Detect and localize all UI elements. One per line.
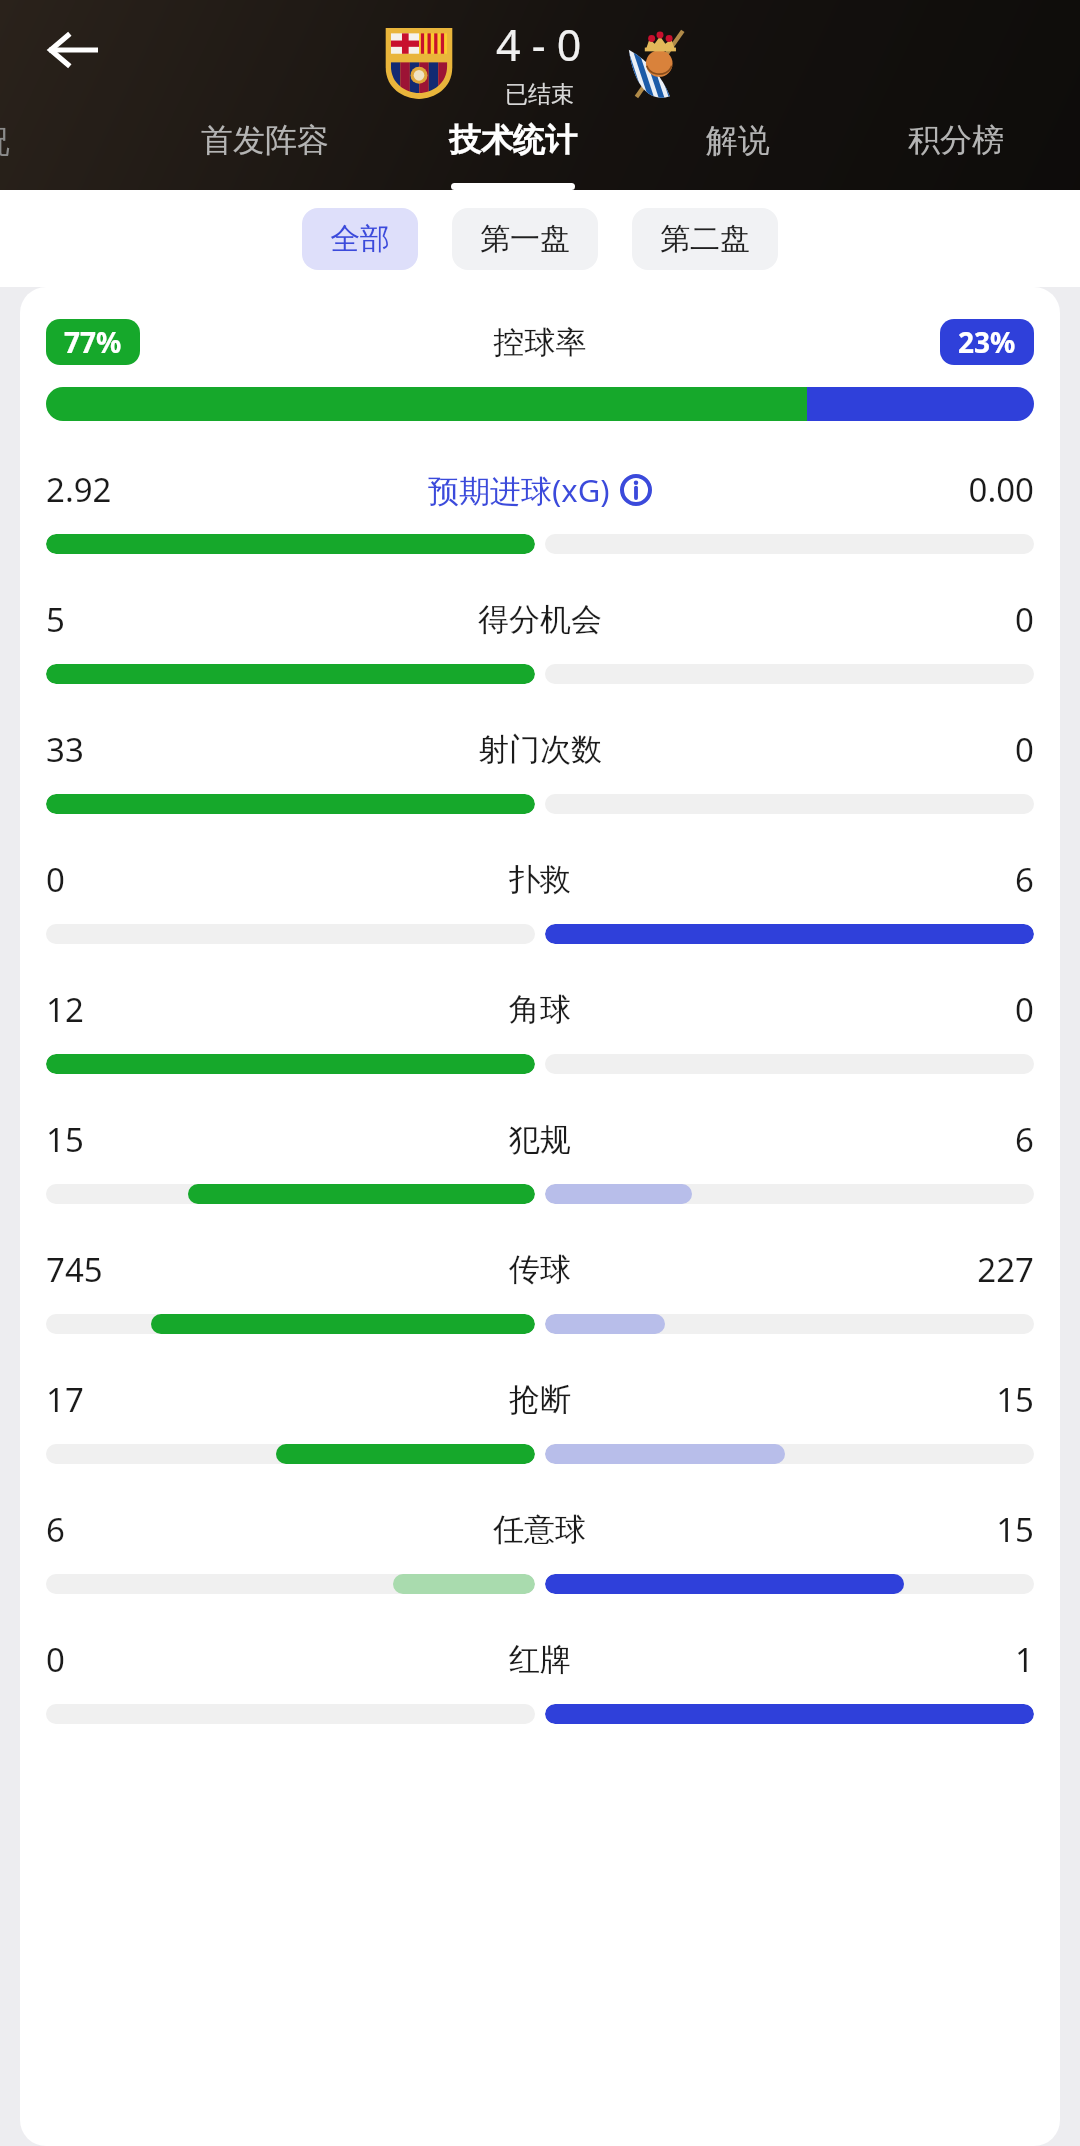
button[interactable]: 解说 xyxy=(637,112,838,190)
staticText: 0.00 xyxy=(652,467,1034,512)
staticText: 0 xyxy=(46,1637,509,1682)
staticText: 角球 xyxy=(509,990,571,1029)
staticText: 77% xyxy=(64,323,122,361)
staticText: 第二盘 xyxy=(660,220,750,258)
staticText: 0 xyxy=(46,857,509,902)
button[interactable]: xG 说明 xyxy=(620,474,652,506)
button[interactable]: 15 xyxy=(20,1117,1060,1247)
staticText: 6 xyxy=(571,1117,1034,1162)
staticText: 23% xyxy=(958,323,1016,361)
button[interactable]: 第二盘 xyxy=(632,208,778,270)
staticText: 第一盘 xyxy=(480,220,570,258)
staticText: 全部 xyxy=(330,220,390,258)
staticText: 17 xyxy=(46,1377,509,1422)
staticText: 15 xyxy=(571,1377,1034,1422)
button[interactable]: 6 xyxy=(20,1507,1060,1637)
staticText: 控球率 xyxy=(140,323,940,362)
button[interactable]: 745 xyxy=(20,1247,1060,1377)
staticText: 射门次数 xyxy=(478,730,602,769)
button[interactable]: 积分榜 xyxy=(838,112,1074,190)
staticText: 犯规 xyxy=(509,1120,571,1159)
staticText: 4 - 0 xyxy=(496,15,582,74)
button[interactable]: 赛况 xyxy=(0,112,140,190)
staticText: 33 xyxy=(46,727,478,772)
staticText: 6 xyxy=(46,1507,493,1552)
button[interactable]: 2.92 xyxy=(20,467,1060,597)
button[interactable]: 33 xyxy=(20,727,1060,857)
staticText: 15 xyxy=(46,1117,509,1162)
staticText: 抢断 xyxy=(509,1380,571,1419)
staticText: 积分榜 xyxy=(908,120,1004,160)
staticText: 227 xyxy=(571,1247,1034,1292)
staticText: 赛况 xyxy=(0,122,10,161)
staticText: 15 xyxy=(586,1507,1034,1552)
button[interactable]: 技术统计 xyxy=(389,112,637,190)
staticText: 5 xyxy=(46,597,478,642)
staticText: 0 xyxy=(571,987,1034,1032)
staticText: 解说 xyxy=(706,120,770,160)
button[interactable]: 12 xyxy=(20,987,1060,1117)
button[interactable]: 首发阵容 xyxy=(140,112,389,190)
button[interactable]: 0 xyxy=(20,857,1060,987)
staticText: 6 xyxy=(571,857,1034,902)
staticText: 技术统计 xyxy=(449,120,577,160)
staticText: 传球 xyxy=(509,1250,571,1289)
staticText: 扑救 xyxy=(509,860,571,899)
button[interactable]: 0 xyxy=(20,1637,1060,1767)
staticText: 已结束 xyxy=(505,80,574,109)
staticText: 首发阵容 xyxy=(201,120,329,160)
staticText: 0 xyxy=(602,727,1034,772)
staticText: 12 xyxy=(46,987,509,1032)
button[interactable]: 5 xyxy=(20,597,1060,727)
staticText: 红牌 xyxy=(509,1640,571,1679)
staticText: 1 xyxy=(571,1637,1034,1682)
button[interactable]: Back xyxy=(26,4,118,96)
staticText: 745 xyxy=(46,1247,509,1292)
staticText: 2.92 xyxy=(46,467,428,512)
staticText: 0 xyxy=(602,597,1034,642)
staticText: 任意球 xyxy=(493,1510,586,1549)
button[interactable]: 第一盘 xyxy=(452,208,598,270)
button[interactable]: 全部 xyxy=(302,208,418,270)
button[interactable]: 17 xyxy=(20,1377,1060,1507)
staticText: 得分机会 xyxy=(478,600,602,639)
staticText: 预期进球(xG) xyxy=(428,469,610,511)
